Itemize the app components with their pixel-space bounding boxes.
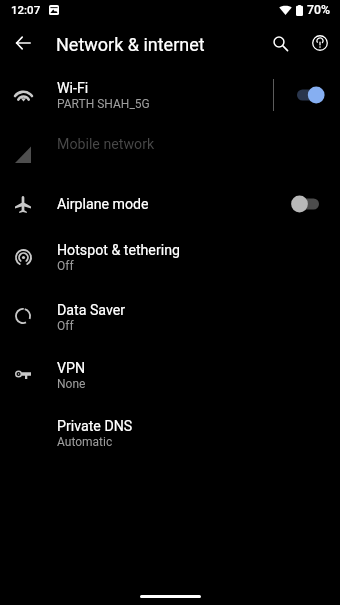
button[interactable]: Help [300,23,340,63]
staticText: Network & internet [56,34,205,55]
staticText: Off [57,259,74,273]
button[interactable]: VPN [0,347,340,403]
staticText: Off [57,319,74,333]
button[interactable]: Airplane mode [0,176,340,232]
button[interactable]: Private DNS [0,405,340,461]
button[interactable]: Mobile network [0,116,340,172]
button[interactable]: Search [260,23,300,63]
staticText: Mobile network [57,136,155,153]
staticText: None [57,377,86,391]
staticText: Automatic [57,435,113,449]
staticText: Hotspot & tethering [57,242,180,259]
button[interactable]: Hotspot & tethering [0,229,340,285]
button[interactable]: Data Saver [0,289,340,345]
button[interactable]: Wi-Fi [0,67,340,123]
staticText: Wi-Fi [57,80,89,97]
staticText: PARTH SHAH_5G [57,97,150,111]
button[interactable]: Turn on [297,192,325,216]
staticText: 12:07 [11,3,41,16]
staticText: 70% [307,3,331,17]
button[interactable]: Back [3,23,43,63]
button[interactable]: Turn off [297,83,325,107]
staticText: Airplane mode [57,196,149,213]
staticText: Data Saver [57,302,126,319]
staticText: VPN [57,360,86,377]
staticText: Private DNS [57,418,133,435]
